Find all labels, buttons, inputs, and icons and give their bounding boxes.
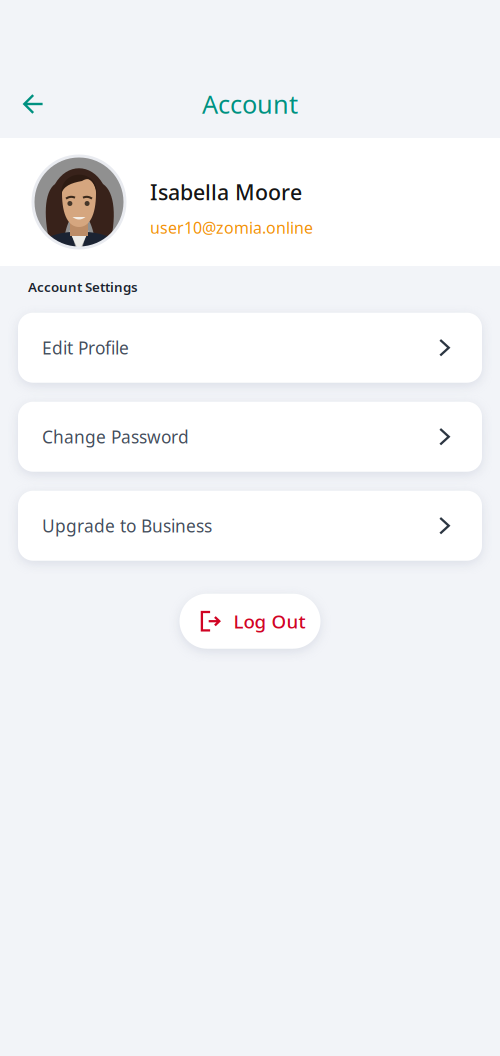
staticText: Upgrade to Business [42,514,212,537]
staticText: Account Settings [28,278,138,296]
button[interactable]: Log Out [179,594,320,649]
staticText: Change Password [42,425,189,448]
button[interactable]: Upgrade to Business [18,491,482,561]
staticText: Log Out [233,609,305,634]
button[interactable]: Change Password [18,402,482,472]
staticText: user10@zomia.online [150,217,313,238]
staticText: Account [202,87,298,121]
staticText: Edit Profile [42,336,129,359]
button[interactable]: Edit Profile [18,313,482,383]
staticText: Isabella Moore [150,178,302,206]
button[interactable]: Back [0,82,58,125]
